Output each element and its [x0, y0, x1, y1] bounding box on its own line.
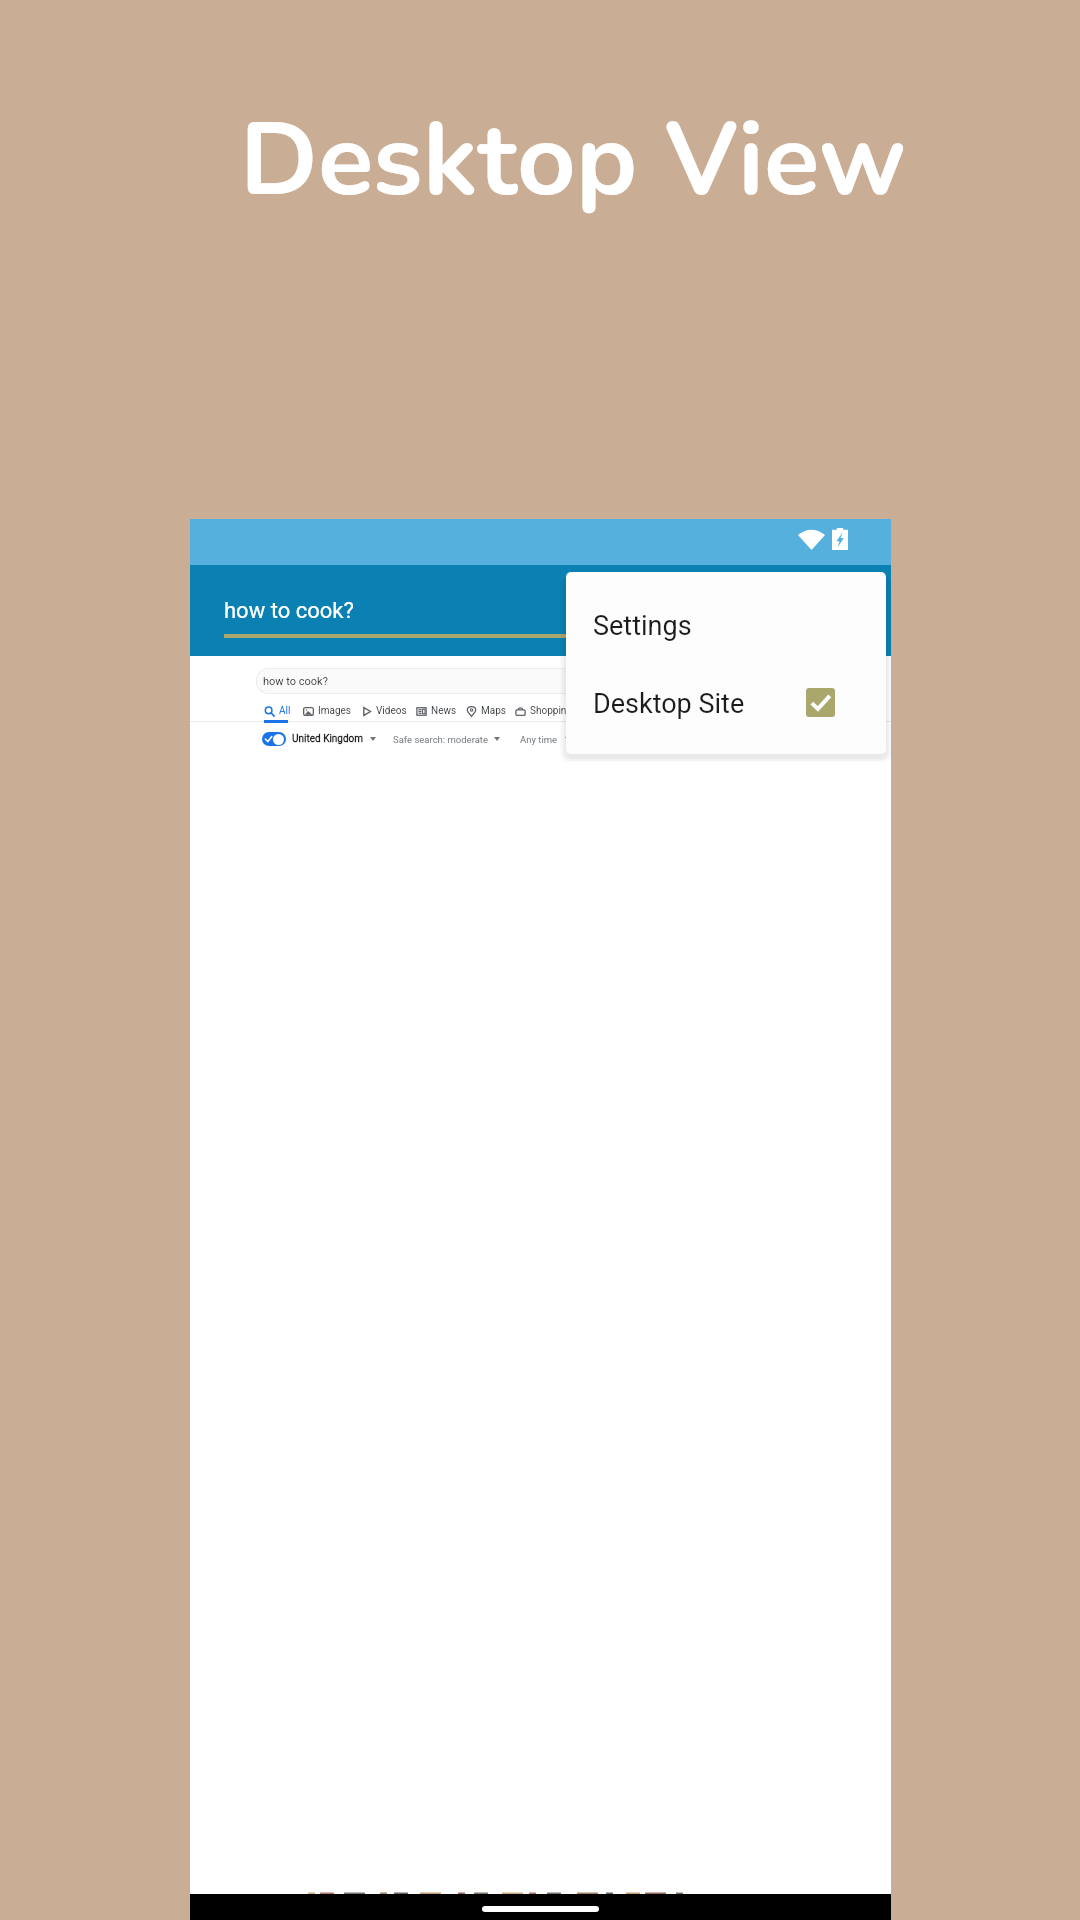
other: Wi-Fi: [798, 529, 825, 550]
button[interactable]: All: [264, 705, 291, 717]
staticText: Desktop Site: [593, 688, 745, 720]
other: Battery charging: [832, 528, 848, 550]
button[interactable]: Desktop Site: [566, 664, 886, 754]
staticText: how to cook?: [224, 598, 354, 624]
button[interactable]: how to cook?: [256, 668, 816, 694]
button[interactable]: Videos: [361, 705, 407, 717]
staticText: Safe search: moderate: [393, 734, 488, 745]
staticText: United Kingdom: [292, 733, 364, 745]
button[interactable]: Home: [482, 1906, 599, 1912]
button[interactable]: Images: [303, 705, 352, 717]
button[interactable]: Settings: [566, 572, 886, 664]
staticText: Videos: [376, 705, 407, 717]
button[interactable]: Desktop site enabled: [806, 688, 835, 717]
button[interactable]: how to cook?: [190, 565, 891, 656]
staticText: All: [279, 705, 291, 717]
button[interactable]: Region toggle: [262, 732, 286, 746]
staticText: News: [431, 705, 457, 717]
button[interactable]: Shopping: [515, 705, 572, 717]
button[interactable]: News: [416, 705, 457, 717]
staticText: Maps: [481, 705, 506, 717]
staticText: Images: [318, 705, 352, 717]
staticText: how to cook?: [263, 675, 328, 688]
staticText: Any time: [520, 734, 558, 745]
staticText: Shopping: [530, 705, 572, 717]
staticText: Settings: [593, 610, 692, 642]
button[interactable]: Maps: [466, 705, 506, 717]
